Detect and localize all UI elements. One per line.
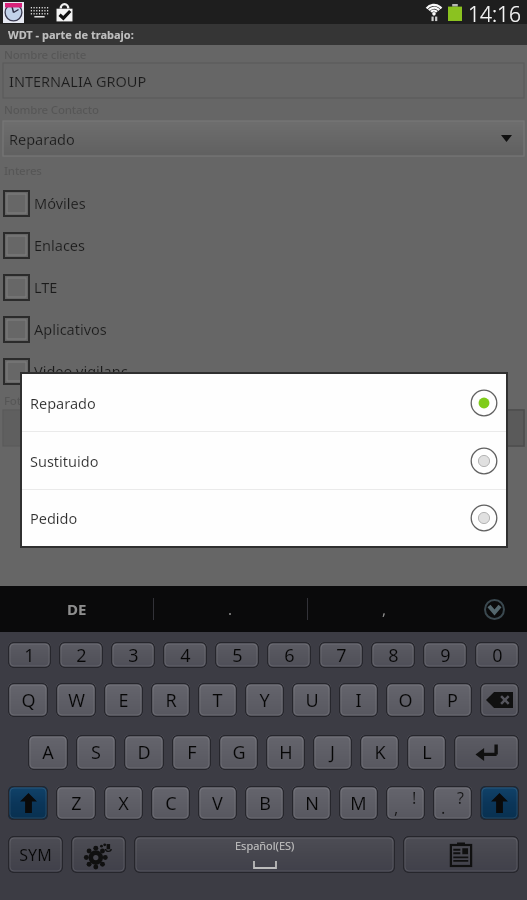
button[interactable]: 6 bbox=[267, 642, 311, 668]
staticText: Sustituido bbox=[30, 451, 470, 471]
staticText: N bbox=[305, 791, 319, 816]
staticText: H bbox=[279, 740, 293, 765]
button[interactable]: Enlaces bbox=[0, 228, 527, 262]
button[interactable]: ! bbox=[386, 786, 425, 820]
staticText: 4 bbox=[180, 643, 191, 668]
button[interactable]: 0 bbox=[475, 642, 519, 668]
button[interactable]: Backspace bbox=[480, 683, 519, 717]
staticText: G bbox=[232, 740, 246, 765]
button[interactable]: W bbox=[56, 683, 96, 717]
staticText: R bbox=[165, 688, 177, 713]
button[interactable]: Pedido bbox=[22, 490, 506, 546]
staticText: 2 bbox=[76, 643, 87, 668]
button[interactable]: B bbox=[245, 786, 284, 820]
staticText: Español(ES) bbox=[235, 838, 295, 853]
staticText: . bbox=[228, 599, 233, 619]
button[interactable]: H bbox=[266, 735, 305, 770]
button[interactable]: J bbox=[313, 735, 352, 770]
button[interactable]: Y bbox=[245, 683, 284, 717]
staticText: A bbox=[42, 740, 54, 765]
staticText: O bbox=[398, 688, 413, 713]
staticText: Fotos bbox=[4, 393, 34, 409]
staticText: S bbox=[91, 740, 101, 765]
button[interactable]: Clipboard bbox=[403, 836, 519, 873]
button[interactable]: Settings bbox=[71, 836, 126, 873]
staticText: Interes bbox=[4, 163, 42, 179]
staticText: , bbox=[382, 599, 387, 619]
button[interactable]: F bbox=[172, 735, 211, 770]
staticText: 5 bbox=[232, 643, 243, 668]
button[interactable]: 9 bbox=[423, 642, 467, 668]
button[interactable]: SYM bbox=[8, 836, 63, 873]
button[interactable]: G bbox=[219, 735, 258, 770]
button[interactable]: Q bbox=[8, 683, 48, 717]
button[interactable]: L bbox=[407, 735, 446, 770]
staticText: V bbox=[212, 791, 223, 816]
button[interactable]: Shift bbox=[480, 786, 519, 820]
button[interactable]: Adjuntar foto bbox=[400, 410, 524, 446]
staticText: LTE bbox=[34, 277, 58, 297]
staticText: B bbox=[259, 791, 271, 816]
button[interactable]: Z bbox=[56, 786, 96, 820]
button[interactable]: 7 bbox=[319, 642, 363, 668]
button[interactable]: X bbox=[104, 786, 143, 820]
button[interactable]: Español(ES) bbox=[134, 836, 395, 873]
button[interactable]: 2 bbox=[59, 642, 103, 668]
button[interactable]: K bbox=[360, 735, 399, 770]
button[interactable]: 8 bbox=[371, 642, 415, 668]
button[interactable]: N bbox=[292, 786, 331, 820]
button[interactable]: R bbox=[151, 683, 190, 717]
staticText: 8 bbox=[388, 643, 399, 668]
button[interactable]: S bbox=[76, 735, 116, 770]
button[interactable]: D bbox=[124, 735, 164, 770]
staticText: J bbox=[330, 740, 335, 765]
staticText: E bbox=[118, 688, 129, 713]
staticText: Z bbox=[71, 791, 82, 816]
staticText: WDT - parte de trabajo: bbox=[8, 27, 134, 42]
button[interactable]: T bbox=[198, 683, 237, 717]
button[interactable]: C bbox=[151, 786, 190, 820]
button[interactable]: V bbox=[198, 786, 237, 820]
button[interactable]: Video vigilanc bbox=[0, 354, 527, 388]
button[interactable]: I bbox=[339, 683, 378, 717]
staticText: , bbox=[394, 797, 399, 819]
button[interactable]: Sustituido bbox=[22, 432, 506, 489]
staticText: Aplicativos bbox=[34, 319, 107, 339]
button[interactable]: Enter bbox=[454, 735, 519, 770]
staticText: Q bbox=[21, 688, 36, 713]
button[interactable]: A bbox=[28, 735, 68, 770]
button[interactable]: P bbox=[433, 683, 472, 717]
button[interactable]: 5 bbox=[215, 642, 259, 668]
button[interactable]: DE bbox=[0, 586, 153, 632]
staticText: 6 bbox=[284, 643, 295, 668]
staticText: Y bbox=[259, 688, 270, 713]
staticText: DE bbox=[67, 599, 87, 619]
button[interactable]: Reparado bbox=[22, 374, 506, 431]
staticText: 14:16 bbox=[468, 0, 522, 24]
button[interactable]: Shift bbox=[8, 786, 48, 820]
button[interactable]: Expand suggestions bbox=[461, 586, 527, 632]
button[interactable]: 4 bbox=[163, 642, 207, 668]
staticText: Enlaces bbox=[34, 235, 85, 255]
staticText: X bbox=[118, 791, 129, 816]
staticText: C bbox=[165, 791, 177, 816]
button[interactable]: INTERNALIA GROUP bbox=[3, 63, 524, 98]
button[interactable]: E bbox=[104, 683, 143, 717]
button[interactable]: LTE bbox=[0, 270, 527, 304]
staticText: ! bbox=[412, 787, 417, 809]
staticText: T bbox=[212, 688, 223, 713]
button[interactable]: M bbox=[339, 786, 378, 820]
button[interactable]: Reparado bbox=[3, 121, 524, 156]
button[interactable]: Aplicativos bbox=[0, 312, 527, 346]
button[interactable]: U bbox=[292, 683, 331, 717]
button[interactable]: Móviles bbox=[0, 186, 527, 220]
button[interactable]: 1 bbox=[8, 642, 51, 668]
staticText: W bbox=[68, 688, 85, 713]
staticText: 9 bbox=[440, 643, 451, 668]
button[interactable]: ? bbox=[433, 786, 472, 820]
button[interactable] bbox=[3, 410, 524, 446]
button[interactable]: O bbox=[386, 683, 425, 717]
button[interactable]: 3 bbox=[111, 642, 155, 668]
